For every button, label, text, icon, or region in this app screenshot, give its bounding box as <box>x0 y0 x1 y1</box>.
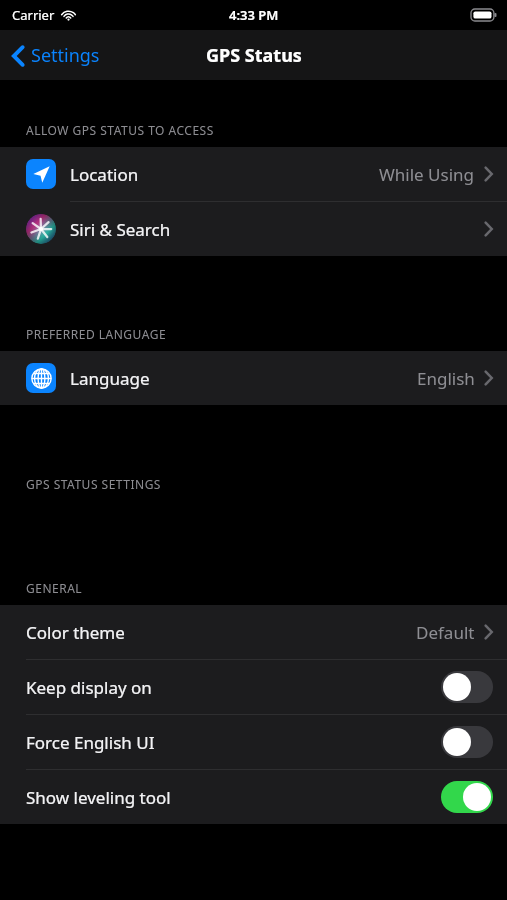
button[interactable]: Location <box>0 147 507 201</box>
button[interactable]: Show leveling tool <box>0 770 507 824</box>
staticText: Language <box>70 367 150 390</box>
staticText: PREFERRED LANGUAGE <box>26 326 167 342</box>
staticText: English <box>417 367 475 390</box>
staticText: GPS STATUS SETTINGS <box>26 476 161 492</box>
staticText: Settings <box>31 43 100 68</box>
staticText: Location <box>70 163 139 186</box>
button[interactable]: Toggle on <box>441 781 493 813</box>
button[interactable]: Keep display on <box>0 660 507 714</box>
button[interactable]: Siri & Search <box>0 202 507 256</box>
staticText: Siri & Search <box>70 218 171 241</box>
button[interactable]: Color theme <box>0 605 507 659</box>
button[interactable]: Language <box>0 351 507 405</box>
staticText: Keep display on <box>26 676 152 699</box>
staticText: Color theme <box>26 621 125 644</box>
staticText: GENERAL <box>26 580 83 596</box>
button[interactable]: Toggle off <box>441 726 493 758</box>
staticText: While Using <box>379 163 475 186</box>
staticText: GPS Status <box>206 43 302 68</box>
staticText: ALLOW GPS STATUS TO ACCESS <box>26 122 214 138</box>
button[interactable]: Settings <box>0 37 110 74</box>
staticText: Carrier <box>12 6 55 24</box>
staticText: Default <box>416 621 475 644</box>
staticText: Force English UI <box>26 731 155 754</box>
staticText: Show leveling tool <box>26 786 171 809</box>
button[interactable]: Force English UI <box>0 715 507 769</box>
staticText: 4:33 PM <box>229 6 279 24</box>
button[interactable]: Toggle off <box>441 671 493 703</box>
